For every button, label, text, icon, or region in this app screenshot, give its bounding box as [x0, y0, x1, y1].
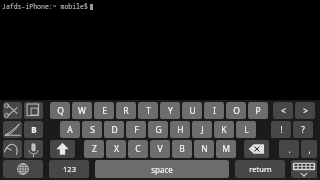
staticText: K — [221, 124, 227, 136]
button[interactable]: G — [148, 121, 168, 138]
staticText: T — [146, 105, 151, 117]
button[interactable]: 123 — [49, 160, 89, 178]
button[interactable]: return — [235, 160, 285, 178]
staticText: H — [177, 124, 184, 136]
staticText: , — [308, 144, 311, 155]
staticText: L — [244, 124, 249, 136]
staticText: I — [213, 105, 216, 117]
button[interactable]: Backspace — [244, 140, 269, 158]
button[interactable]: S — [82, 121, 102, 138]
staticText: J — [201, 124, 204, 136]
staticText: F — [134, 124, 139, 136]
button[interactable]: W — [72, 102, 92, 119]
button[interactable]: . — [279, 140, 299, 158]
staticText: B — [179, 143, 185, 155]
staticText: return — [249, 164, 272, 174]
button[interactable]: Q — [50, 102, 70, 119]
button[interactable]: Cut — [3, 102, 22, 119]
staticText: X — [114, 143, 119, 155]
button[interactable]: Copy — [24, 102, 43, 119]
button[interactable]: Paste — [3, 121, 22, 138]
button[interactable]: J — [192, 121, 212, 138]
staticText: V — [157, 143, 163, 155]
button[interactable]: T — [138, 102, 158, 119]
button[interactable]: < — [273, 102, 293, 119]
staticText: D — [111, 124, 118, 136]
button[interactable]: N — [194, 140, 214, 158]
staticText: R — [123, 105, 129, 117]
button[interactable]: U — [182, 102, 202, 119]
staticText: Y — [168, 105, 173, 117]
button[interactable]: K — [214, 121, 234, 138]
staticText: B — [31, 124, 37, 135]
staticText: Q — [57, 105, 64, 117]
staticText: O — [233, 105, 240, 117]
button[interactable]: Z — [84, 140, 104, 158]
button[interactable]: V — [150, 140, 170, 158]
staticText: ! — [280, 124, 283, 135]
button[interactable]: Change keyboard — [3, 160, 43, 178]
button[interactable]: I — [204, 102, 224, 119]
button[interactable]: B — [24, 121, 43, 138]
staticText: N — [201, 143, 208, 155]
button[interactable]: Y — [160, 102, 180, 119]
button[interactable]: R — [116, 102, 136, 119]
button[interactable]: > — [295, 102, 315, 119]
button[interactable]: P — [248, 102, 268, 119]
button[interactable]: C — [128, 140, 148, 158]
button[interactable]: ! — [271, 121, 291, 138]
staticText: C — [135, 143, 141, 155]
button[interactable]: E — [94, 102, 114, 119]
staticText: Z — [92, 143, 97, 155]
button[interactable]: X — [106, 140, 126, 158]
staticText: P — [255, 105, 261, 117]
button[interactable]: M — [216, 140, 236, 158]
staticText: Jafds-iPhone:~ mobile$ — [2, 2, 88, 11]
button[interactable]: A — [60, 121, 80, 138]
staticText: . — [288, 144, 291, 155]
staticText: G — [155, 124, 162, 136]
button[interactable]: O — [226, 102, 246, 119]
button[interactable]: Shift — [50, 140, 75, 158]
button[interactable]: L — [236, 121, 256, 138]
button[interactable]: H — [170, 121, 190, 138]
staticText: space — [151, 164, 173, 175]
button[interactable]: Undo — [3, 140, 22, 158]
staticText: W — [78, 105, 86, 117]
staticText: U — [189, 105, 196, 117]
staticText: < — [281, 105, 286, 116]
staticText: S — [90, 124, 95, 136]
button[interactable]: Hide keyboard — [291, 160, 317, 178]
staticText: ? — [301, 124, 305, 135]
staticText: M — [222, 143, 230, 155]
button[interactable]: D — [104, 121, 124, 138]
staticText: A — [67, 124, 73, 136]
staticText: E — [102, 105, 107, 117]
button[interactable]: , — [301, 140, 317, 158]
button[interactable]: B — [172, 140, 192, 158]
staticText: > — [303, 105, 308, 116]
button[interactable]: ? — [293, 121, 313, 138]
button[interactable]: F — [126, 121, 146, 138]
staticText: 123 — [63, 164, 76, 174]
button[interactable]: Dictation — [24, 140, 43, 158]
button[interactable]: space — [95, 160, 229, 178]
